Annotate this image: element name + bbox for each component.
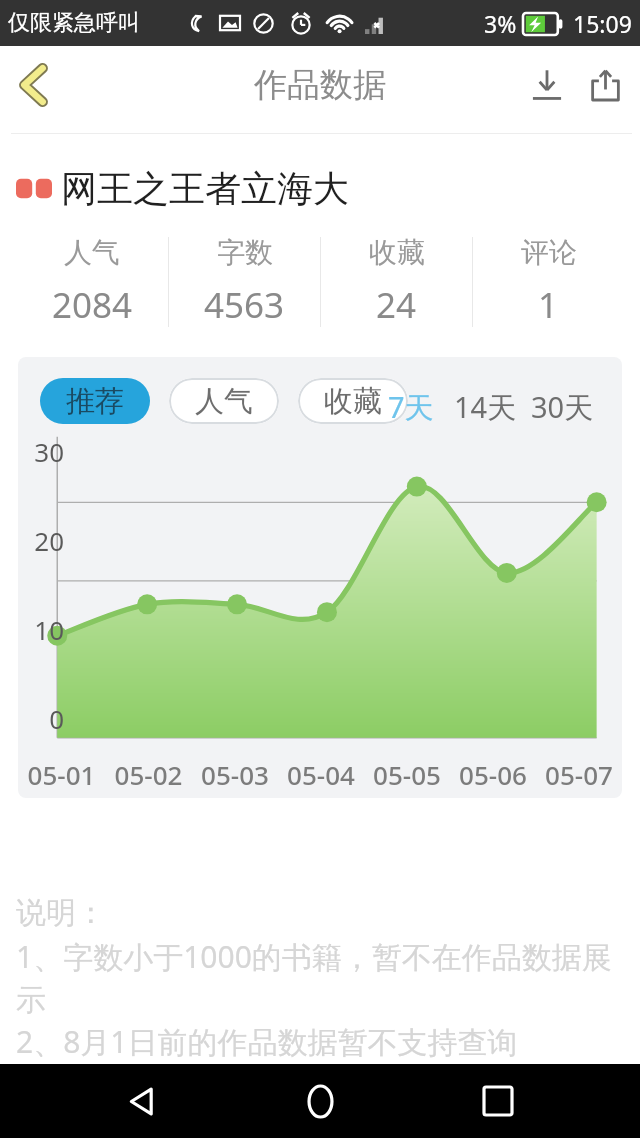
button[interactable]: 字数 [169, 227, 320, 337]
button[interactable]: 30天 [531, 387, 594, 427]
button[interactable]: 推荐 [40, 378, 150, 424]
button[interactable]: 收藏 [321, 227, 472, 337]
button[interactable]: 7天 [388, 387, 434, 427]
button[interactable]: 收藏 [298, 378, 408, 424]
staticText: 1 [538, 281, 559, 329]
staticText: 4563 [204, 281, 285, 329]
staticText: 人气 [64, 235, 120, 270]
button[interactable]: Back [106, 1065, 178, 1137]
staticText: 3% [484, 8, 517, 39]
staticText: 05-06 [450, 757, 536, 792]
staticText: 字数 [217, 235, 273, 270]
staticText: 24 [376, 281, 417, 329]
staticText: 仅限紧急呼叫 [8, 9, 140, 37]
staticText: 2、8月1日前的作品数据暂不支持查询 [16, 1021, 518, 1062]
staticText: 评论 [521, 235, 577, 270]
button[interactable]: Back [0, 52, 66, 118]
staticText: 15:09 [573, 8, 632, 39]
button[interactable]: 网王之王者立海大 [16, 166, 640, 211]
staticText: 05-05 [364, 757, 450, 792]
staticText: 网王之王者立海大 [61, 166, 349, 211]
staticText: 收藏 [369, 235, 425, 270]
staticText: 10 [22, 612, 64, 647]
button[interactable]: 人气 [16, 227, 168, 337]
button[interactable]: Share [576, 56, 634, 114]
button[interactable]: Download [518, 56, 576, 114]
staticText: 1、字数小于1000的书籍，暂不在作品数据展示 [16, 936, 630, 1019]
staticText: 05-04 [278, 757, 364, 792]
staticText: 30 [22, 434, 64, 469]
staticText: 05-02 [105, 757, 192, 792]
staticText: 30天 [531, 387, 594, 427]
staticText: 14天 [454, 387, 517, 427]
button[interactable]: Recents [462, 1065, 534, 1137]
staticText: 0 [22, 701, 64, 736]
staticText: 20 [22, 523, 64, 558]
button[interactable]: 14天 [454, 387, 517, 427]
staticText: 05-07 [536, 757, 622, 792]
button[interactable]: 评论 [473, 227, 624, 337]
staticText: 2084 [52, 281, 133, 329]
staticText: 人气 [195, 383, 253, 420]
staticText: 推荐 [66, 383, 124, 420]
staticText: 收藏 [324, 383, 382, 420]
staticText: 05-03 [192, 757, 278, 792]
button[interactable]: Home [284, 1065, 356, 1137]
button[interactable]: 人气 [169, 378, 279, 424]
staticText: 作品数据 [254, 64, 386, 106]
staticText: 05-01 [18, 757, 105, 792]
staticText: 7天 [388, 387, 434, 427]
staticText: 说明： [16, 894, 106, 932]
